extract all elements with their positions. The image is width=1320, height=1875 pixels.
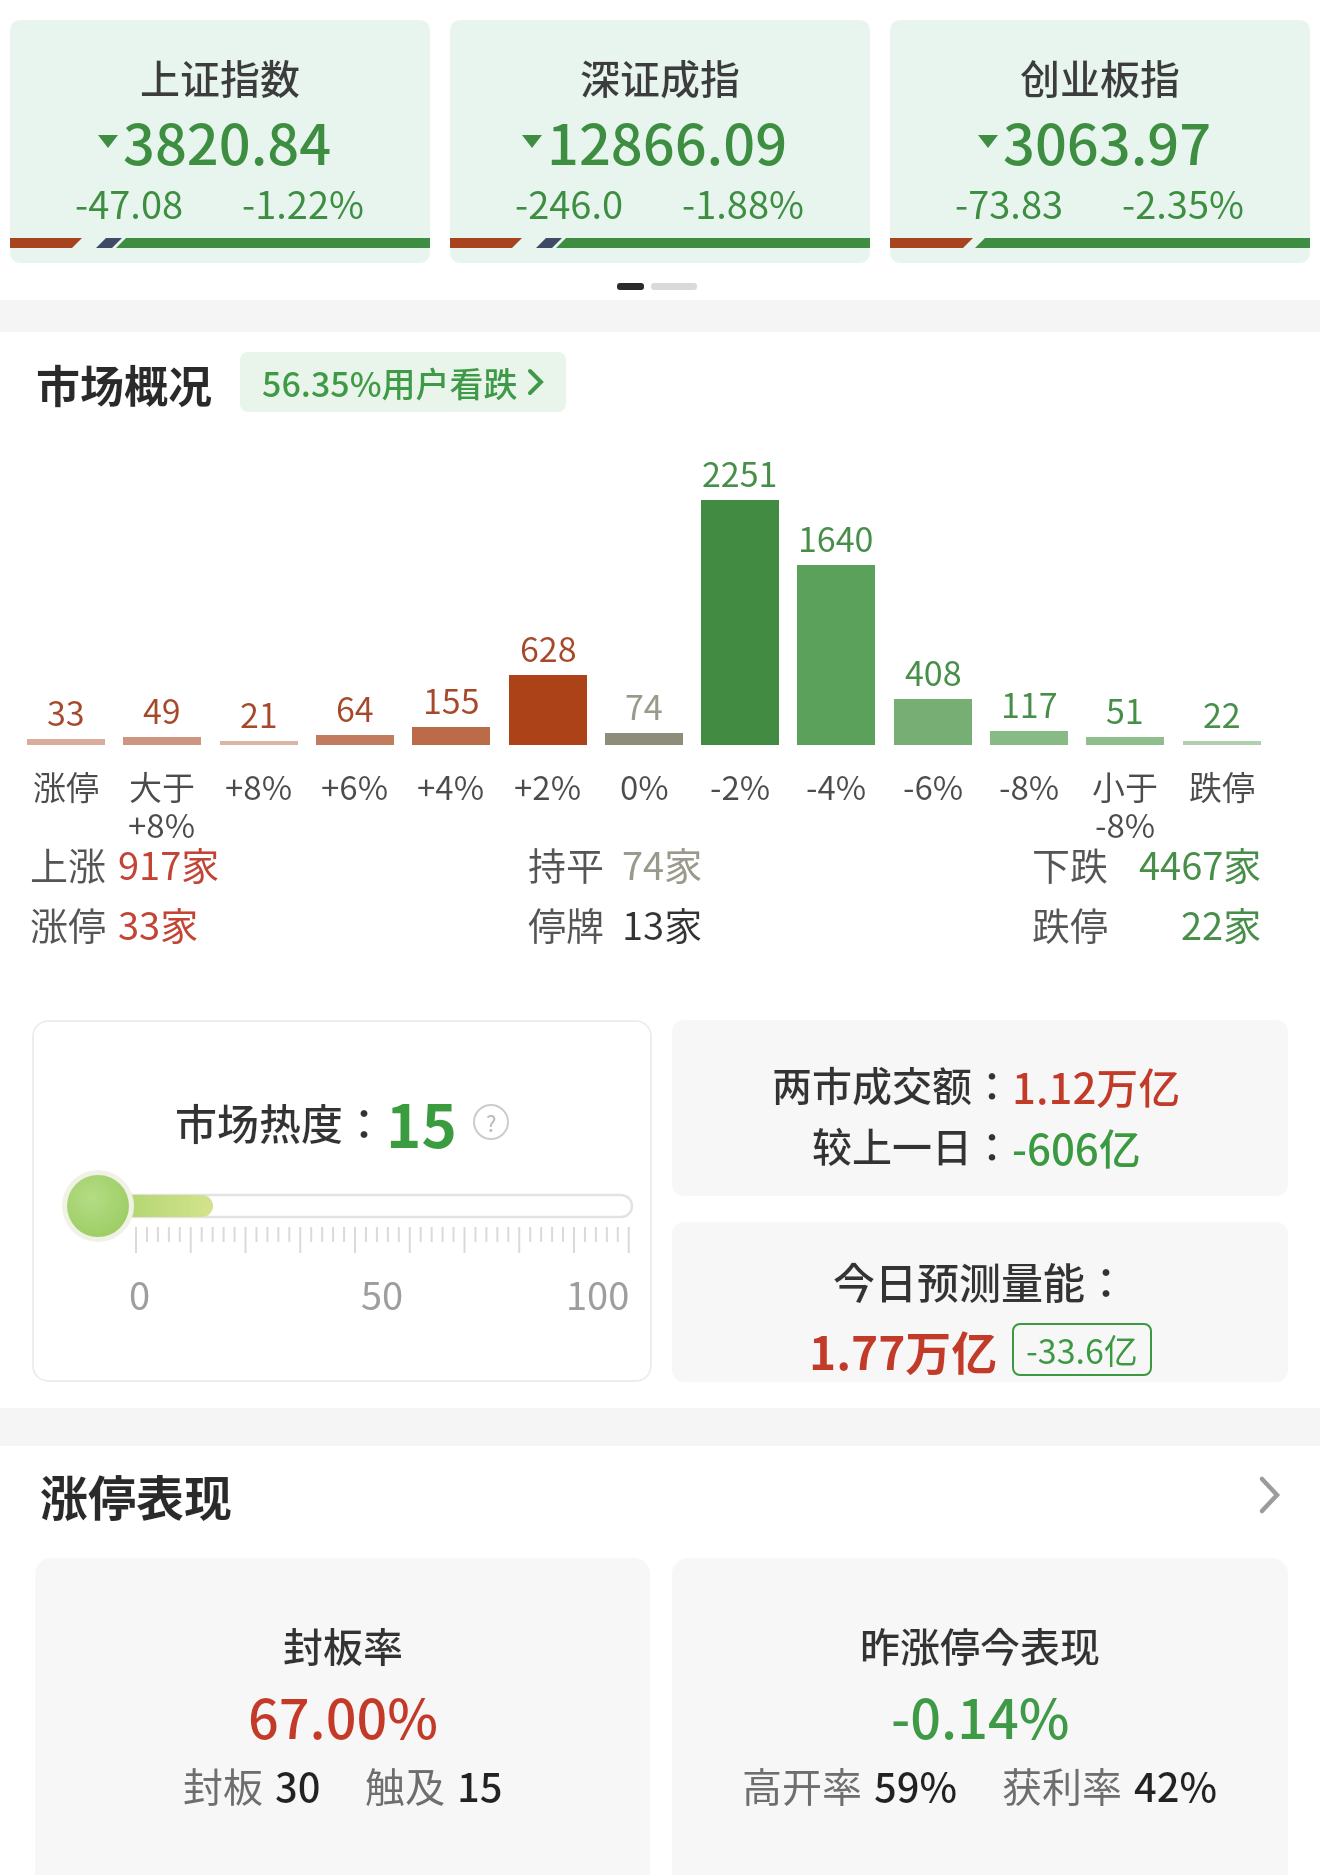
staticText: 13家 bbox=[622, 896, 703, 951]
staticText: 22家 bbox=[1181, 896, 1262, 951]
staticText: 49 bbox=[143, 685, 181, 734]
staticText: ? bbox=[486, 1106, 497, 1138]
button[interactable]: 封板率 bbox=[35, 1558, 650, 1875]
staticText: 408 bbox=[905, 647, 962, 696]
staticText: 117 bbox=[1001, 679, 1058, 728]
button[interactable]: 今日预测量能： bbox=[672, 1222, 1288, 1382]
button[interactable]: 昨涨停今表现 bbox=[672, 1558, 1288, 1875]
staticText: 917家 bbox=[118, 836, 220, 891]
staticText: -73.83 bbox=[955, 175, 1064, 230]
staticText: 30 bbox=[275, 1756, 321, 1814]
staticText: 涨停 bbox=[33, 762, 99, 810]
staticText: 59% bbox=[874, 1756, 958, 1814]
staticText: +6% bbox=[321, 762, 389, 810]
staticText: +8% bbox=[225, 762, 293, 810]
staticText: -2.35% bbox=[1122, 175, 1245, 230]
staticText: 155 bbox=[423, 675, 480, 724]
staticText: 4467家 bbox=[1139, 836, 1262, 891]
staticText: 持平 bbox=[528, 836, 605, 891]
staticText: 22 bbox=[1203, 689, 1241, 738]
staticText: 触及 bbox=[365, 1756, 445, 1814]
staticText: 74 bbox=[625, 681, 663, 730]
staticText: 50 bbox=[361, 1266, 404, 1321]
staticText: 74家 bbox=[622, 836, 703, 891]
staticText: 100 bbox=[566, 1266, 630, 1321]
staticText: 昨涨停今表现 bbox=[860, 1616, 1100, 1674]
staticText: 封板率 bbox=[283, 1616, 403, 1674]
staticText: -246.0 bbox=[515, 175, 624, 230]
staticText: 64 bbox=[336, 683, 374, 732]
staticText: -8% bbox=[1095, 800, 1156, 848]
staticText: 15 bbox=[386, 1078, 457, 1165]
staticText: 高开率 bbox=[742, 1756, 862, 1814]
button[interactable]: 上证指数 bbox=[10, 20, 430, 263]
staticText: 3820.84 bbox=[123, 100, 332, 181]
staticText: 获利率 bbox=[1002, 1756, 1122, 1814]
staticText: -1.22% bbox=[242, 175, 365, 230]
staticText: 628 bbox=[520, 623, 577, 672]
staticText: -2% bbox=[710, 762, 771, 810]
button[interactable]: 56.35%用户看跌 bbox=[240, 352, 566, 412]
staticText: -606亿 bbox=[1012, 1116, 1141, 1177]
staticText: 涨停 bbox=[30, 896, 107, 951]
staticText: 2251 bbox=[702, 448, 778, 497]
staticText: 21 bbox=[240, 689, 278, 738]
staticText: -0.14% bbox=[891, 1676, 1070, 1754]
staticText: 3063.97 bbox=[1003, 100, 1212, 181]
staticText: 创业板指 bbox=[1020, 48, 1180, 106]
staticText: 下跌 bbox=[1032, 836, 1109, 891]
staticText: -47.08 bbox=[75, 175, 184, 230]
staticText: 51 bbox=[1106, 685, 1144, 734]
staticText: -1.88% bbox=[682, 175, 805, 230]
staticText: -8% bbox=[999, 762, 1060, 810]
staticText: 市场热度： bbox=[175, 1091, 386, 1152]
staticText: 涨停表现 bbox=[40, 1460, 233, 1530]
staticText: 今日预测量能： bbox=[833, 1250, 1128, 1311]
staticText: 封板 bbox=[183, 1756, 263, 1814]
staticText: +2% bbox=[514, 762, 582, 810]
button[interactable]: 两市成交额： bbox=[672, 1020, 1288, 1196]
staticText: 0 bbox=[129, 1266, 151, 1321]
staticText: 上涨 bbox=[30, 836, 107, 891]
staticText: 15 bbox=[457, 1756, 503, 1814]
staticText: 1640 bbox=[798, 513, 874, 562]
staticText: 深证成指 bbox=[580, 48, 740, 106]
staticText: 67.00% bbox=[248, 1676, 438, 1754]
staticText: 33家 bbox=[118, 896, 199, 951]
staticText: 跌停 bbox=[1189, 762, 1255, 810]
staticText: -4% bbox=[806, 762, 867, 810]
staticText: 12866.09 bbox=[547, 100, 788, 181]
staticText: 56.35%用户看跌 bbox=[262, 358, 518, 407]
button[interactable]: 创业板指 bbox=[890, 20, 1310, 263]
staticText: 市场概况 bbox=[36, 352, 212, 416]
button[interactable]: 市场热度： bbox=[32, 1020, 652, 1382]
staticText: 两市成交额： bbox=[772, 1055, 1012, 1113]
staticText: 1.77万亿 bbox=[809, 1317, 998, 1382]
staticText: +8% bbox=[128, 800, 196, 848]
staticText: -6% bbox=[903, 762, 964, 810]
staticText: 33 bbox=[47, 687, 85, 736]
button[interactable]: 深证成指 bbox=[450, 20, 870, 263]
staticText: 跌停 bbox=[1032, 896, 1109, 951]
staticText: 停牌 bbox=[528, 896, 605, 951]
staticText: 小于 bbox=[1092, 762, 1158, 810]
staticText: -33.6亿 bbox=[1026, 1325, 1138, 1374]
staticText: 上证指数 bbox=[140, 48, 300, 106]
staticText: 0% bbox=[620, 762, 669, 810]
staticText: 大于 bbox=[129, 762, 195, 810]
staticText: 42% bbox=[1134, 1756, 1218, 1814]
staticText: +4% bbox=[417, 762, 485, 810]
button[interactable]: 涨停表现 bbox=[0, 1460, 1320, 1530]
staticText: 1.12万亿 bbox=[1012, 1055, 1181, 1116]
staticText: 较上一日： bbox=[812, 1116, 1012, 1174]
